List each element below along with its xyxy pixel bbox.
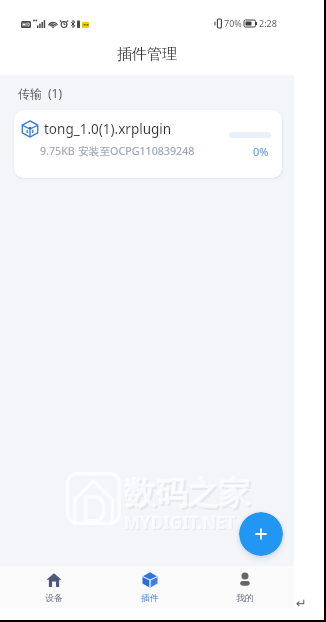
staticText: 传输 (1) [18, 85, 63, 101]
button[interactable]: 我的 [197, 566, 292, 608]
button[interactable]: Add plugin [239, 512, 283, 556]
staticText: 我的 [236, 593, 254, 604]
button[interactable]: 设备 [6, 566, 102, 608]
staticText: 0% [253, 144, 269, 159]
staticText: 设备 [45, 593, 63, 604]
staticText: tong_1.0(1).xrplugin [44, 120, 172, 138]
staticText: 数码之家 [124, 474, 250, 514]
staticText: 9.75KB [40, 144, 78, 159]
staticText: MYDIGIT.NET [125, 512, 237, 535]
staticText: 插件 [141, 593, 159, 604]
button[interactable]: tong_1.0(1).xrplugin [14, 110, 282, 178]
staticText: 安装至OCPG110839248 [78, 144, 195, 159]
staticText: 70% [224, 17, 242, 29]
staticText: MYDIGIT.NET [124, 511, 236, 534]
staticText: 数码之家 [126, 476, 252, 516]
staticText: ↵ [296, 596, 307, 611]
staticText: 插件管理 [117, 45, 177, 64]
button[interactable]: 插件 [102, 566, 197, 608]
staticText: 2:28 [259, 17, 277, 29]
